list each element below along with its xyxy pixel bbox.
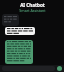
staticText: Smart Assistant <box>19 8 46 13</box>
staticText: AI Chatbot <box>20 2 45 8</box>
button[interactable] <box>2 14 19 26</box>
button[interactable]: Send <box>57 66 62 71</box>
button[interactable] <box>5 27 35 35</box>
button[interactable] <box>5 40 33 64</box>
